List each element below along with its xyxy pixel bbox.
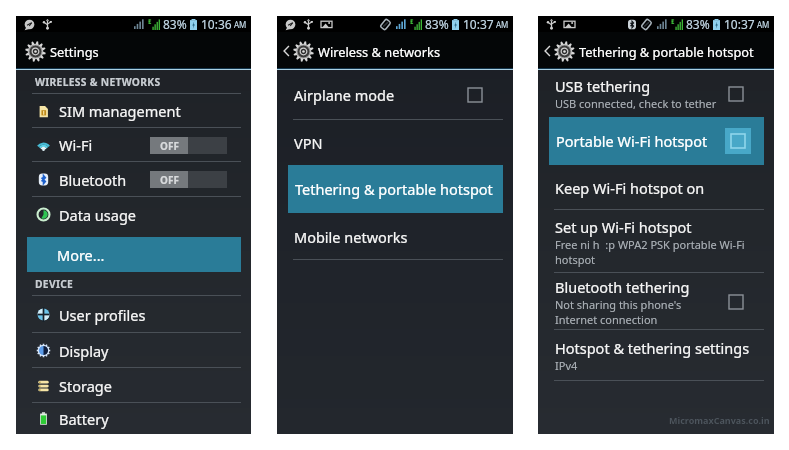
button[interactable]: Bluetooth tethering bbox=[538, 273, 774, 330]
staticText: 83% bbox=[686, 16, 710, 32]
staticText: Free ni h :p WPA2 PSK portable Wi-Fi bbox=[555, 237, 745, 252]
staticText: USB tethering bbox=[555, 76, 651, 96]
staticText: Portable Wi-Fi hotspot bbox=[556, 131, 708, 151]
staticText: Mobile networks bbox=[294, 227, 408, 247]
button[interactable]: Wi-Fi bbox=[16, 128, 251, 162]
button[interactable]: Hotspot & tethering settings bbox=[538, 330, 774, 381]
staticText: 83% bbox=[163, 16, 187, 32]
staticText: Bluetooth bbox=[59, 170, 127, 190]
staticText: AM bbox=[757, 19, 770, 30]
button[interactable]: VPN bbox=[277, 120, 513, 165]
button[interactable]: Wi-Fi switch bbox=[150, 137, 227, 154]
staticText: hotspot bbox=[555, 252, 596, 267]
staticText: AM bbox=[496, 19, 509, 30]
button[interactable]: Toggle Bluetooth tethering bbox=[726, 292, 746, 312]
staticText: Internet connection bbox=[555, 312, 658, 327]
button[interactable]: User profiles bbox=[16, 296, 251, 333]
staticText: Data usage bbox=[59, 205, 136, 225]
button[interactable]: Bluetooth switch bbox=[150, 171, 227, 188]
button[interactable]: Tethering & portable hotspot bbox=[288, 165, 503, 213]
staticText: WIRELESS & NETWORKS bbox=[35, 75, 161, 89]
staticText: 10:37 bbox=[463, 16, 494, 32]
button[interactable]: Set up Wi-Fi hotspot bbox=[538, 210, 774, 273]
staticText: OFF bbox=[160, 173, 179, 187]
staticText: 83% bbox=[425, 16, 449, 32]
button[interactable]: Portable Wi-Fi hotspot bbox=[549, 117, 764, 165]
staticText: User profiles bbox=[59, 305, 146, 325]
staticText: Keep Wi-Fi hotspot on bbox=[555, 178, 705, 198]
staticText: Tethering & portable hotspot bbox=[295, 179, 493, 199]
staticText: SIM management bbox=[59, 101, 181, 121]
button[interactable]: SIM management bbox=[16, 94, 251, 128]
staticText: Wireless & networks bbox=[318, 43, 441, 60]
staticText: MicromaxCanvas.co.in bbox=[669, 414, 770, 426]
button[interactable]: Back bbox=[541, 42, 553, 60]
staticText: OFF bbox=[160, 139, 179, 153]
button[interactable]: Toggle USB tethering bbox=[726, 84, 746, 104]
button[interactable]: Bluetooth bbox=[16, 162, 251, 197]
staticText: VPN bbox=[294, 133, 323, 153]
staticText: DEVICE bbox=[35, 277, 74, 291]
staticText: USB connected, check to tether bbox=[555, 96, 717, 111]
button[interactable]: Airplane mode bbox=[277, 70, 513, 120]
staticText: Settings bbox=[50, 43, 99, 60]
button[interactable]: Storage bbox=[16, 368, 251, 403]
staticText: Tethering & portable hotspot bbox=[579, 43, 754, 60]
staticText: Bluetooth tethering bbox=[555, 277, 690, 297]
button[interactable]: Battery bbox=[16, 403, 251, 434]
staticText: Set up Wi-Fi hotspot bbox=[555, 217, 692, 237]
button[interactable]: More... bbox=[27, 237, 241, 272]
button[interactable]: Keep Wi-Fi hotspot on bbox=[538, 165, 774, 210]
staticText: Display bbox=[59, 341, 109, 361]
staticText: Hotspot & tethering settings bbox=[555, 338, 750, 358]
staticText: More... bbox=[57, 245, 105, 265]
staticText: Battery bbox=[59, 409, 109, 429]
button[interactable]: Data usage bbox=[16, 197, 251, 232]
staticText: Wi-Fi bbox=[59, 135, 93, 155]
button[interactable]: Back bbox=[280, 42, 292, 60]
button[interactable]: Mobile networks bbox=[277, 213, 513, 260]
staticText: IPv4 bbox=[555, 358, 578, 373]
button[interactable]: Display bbox=[16, 333, 251, 368]
staticText: AM bbox=[234, 19, 247, 30]
staticText: Storage bbox=[59, 376, 112, 396]
staticText: Not sharing this phone's bbox=[555, 297, 682, 312]
staticText: 10:37 bbox=[724, 16, 755, 32]
button[interactable]: USB tethering bbox=[538, 70, 774, 117]
staticText: 10:36 bbox=[201, 16, 232, 32]
button[interactable]: Toggle Airplane mode bbox=[465, 85, 485, 105]
staticText: Airplane mode bbox=[294, 85, 395, 105]
